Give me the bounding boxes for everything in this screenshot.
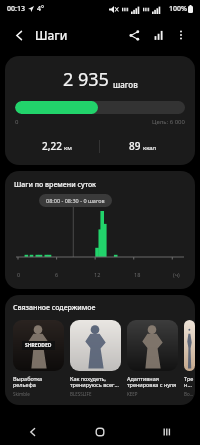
- staticText: 89: [129, 139, 141, 153]
- staticText: Как похудеть, тренируюсь всего ...: [70, 375, 121, 389]
- staticText: Шаги: [35, 27, 68, 43]
- button[interactable]: Тренировочные программы: [184, 320, 195, 397]
- staticText: 4°: [37, 4, 44, 14]
- button[interactable]: Home: [66, 419, 133, 445]
- button[interactable]: More options: [170, 24, 192, 46]
- staticText: 100%: [169, 4, 187, 14]
- staticText: 00:13: [7, 4, 25, 14]
- staticText: Адаптивная тренировка с нуля: [127, 375, 178, 389]
- staticText: Связанное содержимое: [13, 303, 96, 313]
- staticText: 6: [55, 271, 59, 278]
- button[interactable]: Шаги по времени суток: [5, 171, 195, 289]
- button[interactable]: Back: [0, 419, 66, 445]
- staticText: 0: [17, 271, 21, 278]
- button[interactable]: Back: [8, 24, 30, 46]
- staticText: 18: [134, 271, 141, 278]
- staticText: 0: [15, 118, 19, 126]
- staticText: Skimble: [13, 391, 30, 397]
- staticText: BLESSLIFE: [70, 391, 92, 397]
- button[interactable]: Share: [122, 23, 146, 47]
- staticText: км: [64, 144, 72, 152]
- staticText: 2 935: [63, 67, 109, 92]
- button[interactable]: Адаптивная тренировка с нуля: [127, 320, 178, 397]
- staticText: Шаги по времени суток: [14, 180, 97, 190]
- staticText: KEEP: [127, 391, 138, 397]
- staticText: шагов: [113, 79, 138, 90]
- staticText: ккал: [143, 144, 157, 152]
- staticText: 12: [94, 271, 101, 278]
- staticText: Тренировочные программы: [184, 375, 195, 389]
- staticText: SHREDDED: [25, 342, 52, 349]
- staticText: (ч): [173, 271, 180, 278]
- button[interactable]: Как похудеть, тренируюсь всего ...: [70, 320, 121, 397]
- staticText: 08:00 - 08:30 - 0 шагов: [46, 197, 105, 204]
- button[interactable]: SHREDDED: [13, 320, 64, 397]
- button[interactable]: 2 935: [5, 56, 195, 165]
- button[interactable]: Statistics: [146, 23, 170, 47]
- staticText: Цель: 6 000: [152, 118, 185, 126]
- staticText: Выработка рельефа: [13, 375, 64, 389]
- staticText: 2,22: [42, 139, 62, 153]
- button[interactable]: Recent apps: [133, 419, 200, 445]
- staticText: Bodybuilding: [184, 391, 195, 397]
